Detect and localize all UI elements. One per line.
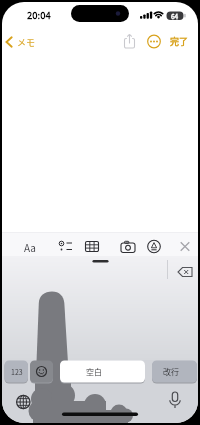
button[interactable]: 空白 bbox=[60, 361, 128, 383]
button[interactable] bbox=[30, 361, 53, 383]
button[interactable] bbox=[175, 238, 195, 255]
button[interactable] bbox=[81, 238, 103, 255]
staticText: 完了 bbox=[170, 35, 189, 48]
staticText: 空白 bbox=[86, 366, 102, 378]
button[interactable] bbox=[174, 263, 196, 281]
button[interactable] bbox=[166, 390, 184, 410]
staticText: 64 bbox=[171, 11, 179, 20]
button[interactable] bbox=[146, 33, 162, 50]
staticText: 123 bbox=[11, 367, 23, 377]
button[interactable]: 完了 bbox=[166, 33, 192, 50]
button[interactable] bbox=[121, 33, 138, 50]
button[interactable]: Aa bbox=[20, 238, 40, 255]
button[interactable] bbox=[143, 238, 165, 255]
staticText: Aa bbox=[24, 240, 36, 254]
button[interactable] bbox=[117, 238, 139, 255]
staticText: メモ bbox=[17, 36, 36, 49]
button[interactable] bbox=[14, 393, 33, 412]
button[interactable]: 改行 bbox=[152, 361, 190, 383]
button[interactable]: メモ bbox=[4, 33, 38, 51]
staticText: 改行 bbox=[163, 366, 179, 378]
staticText: 20:04 bbox=[27, 8, 51, 22]
button[interactable]: 123 bbox=[5, 361, 29, 383]
button[interactable] bbox=[54, 238, 76, 255]
